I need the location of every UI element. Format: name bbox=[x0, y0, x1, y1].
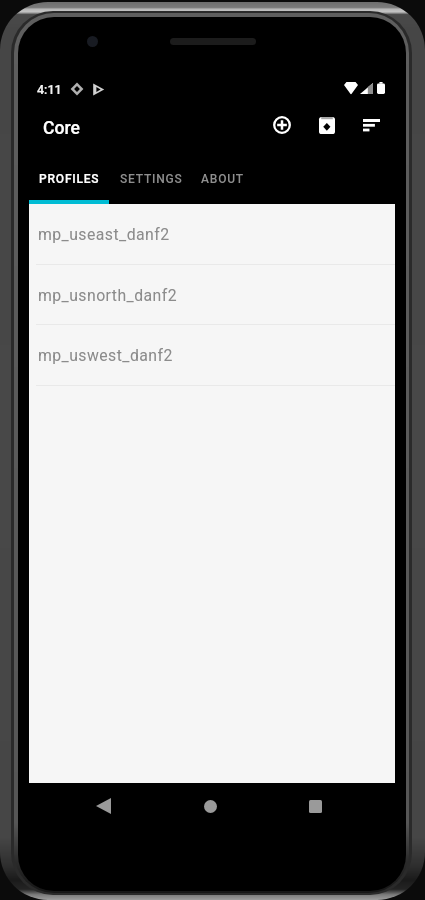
staticText: ABOUT bbox=[201, 172, 244, 186]
staticText: Core bbox=[43, 118, 80, 139]
button[interactable]: ABOUT bbox=[193, 155, 252, 204]
staticText: 4:11 bbox=[37, 82, 62, 97]
button[interactable]: mp_uswest_danf2 bbox=[29, 325, 395, 386]
button[interactable]: SETTINGS bbox=[109, 155, 193, 204]
button[interactable]: mp_usnorth_danf2 bbox=[29, 265, 395, 325]
button[interactable]: Back bbox=[81, 784, 125, 828]
button[interactable]: Add profile bbox=[259, 102, 305, 148]
staticText: mp_usnorth_danf2 bbox=[38, 286, 177, 305]
staticText: mp_useast_danf2 bbox=[38, 225, 170, 244]
staticText: mp_uswest_danf2 bbox=[38, 346, 173, 365]
staticText: PROFILES bbox=[39, 172, 100, 186]
button[interactable]: Save bbox=[304, 102, 350, 148]
staticText: SETTINGS bbox=[120, 172, 183, 186]
button[interactable]: Recents bbox=[293, 784, 337, 828]
button[interactable]: PROFILES bbox=[29, 155, 109, 204]
button[interactable]: Sort bbox=[348, 102, 394, 148]
button[interactable]: Home bbox=[188, 784, 232, 828]
button[interactable]: mp_useast_danf2 bbox=[29, 204, 395, 265]
